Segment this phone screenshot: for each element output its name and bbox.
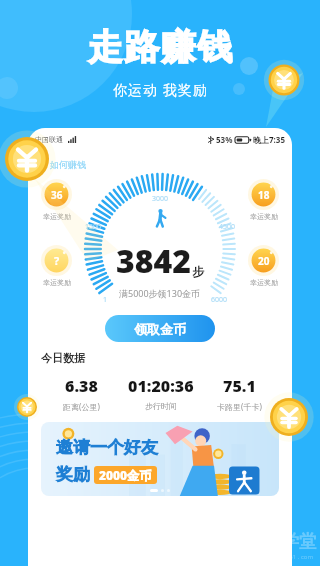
staticText: 满5000步领130金币 xyxy=(119,287,201,299)
button[interactable]: 18 xyxy=(247,178,280,222)
staticText: 1500 xyxy=(85,222,102,232)
button[interactable]: ? xyxy=(40,244,73,288)
staticText: 中国联通 xyxy=(35,135,63,144)
staticText: 步 xyxy=(192,264,204,279)
staticText: 幸运奖励 xyxy=(250,212,278,221)
staticText: 今日数据 xyxy=(41,351,85,365)
button[interactable]: 36 xyxy=(40,178,73,222)
staticText: 奖励 xyxy=(56,464,90,485)
button[interactable]: 如何赚钱 xyxy=(35,156,89,173)
staticText: 6000 xyxy=(211,295,228,305)
staticText: 18 xyxy=(258,188,270,202)
staticText: 3842 xyxy=(116,239,192,283)
staticText: 20 xyxy=(258,254,270,268)
staticText: 1 xyxy=(103,295,108,305)
staticText: 晚上7:35 xyxy=(253,134,285,145)
staticText: 卡路里(千卡) xyxy=(217,401,262,412)
staticText: ? xyxy=(54,253,60,268)
button[interactable]: 邀请一个好友 xyxy=(41,422,279,496)
staticText: 步行时间 xyxy=(145,401,177,411)
staticText: 幸运奖励 xyxy=(43,278,71,287)
staticText: 领取金币 xyxy=(134,321,186,337)
staticText: 软件学堂 xyxy=(248,531,316,552)
button[interactable]: 领取金币 xyxy=(105,315,215,342)
staticText: 幸运奖励 xyxy=(43,212,71,221)
staticText: 邀请一个好友 xyxy=(56,437,158,458)
staticText: 6.38 xyxy=(65,375,98,397)
staticText: 走路赚钱 xyxy=(87,25,233,69)
staticText: 你运动 我奖励 xyxy=(113,80,208,99)
staticText: 距离(公里) xyxy=(63,401,100,412)
staticText: 2000金币 xyxy=(99,467,152,483)
staticText: 36 xyxy=(51,188,63,202)
staticText: 幸运奖励 xyxy=(250,278,278,287)
staticText: 75.1 xyxy=(223,375,256,397)
staticText: 01:20:36 xyxy=(128,375,194,397)
staticText: 53% xyxy=(216,134,233,145)
staticText: 4500 xyxy=(219,222,236,232)
button[interactable]: 20 xyxy=(247,244,280,288)
staticText: 3000 xyxy=(152,194,169,204)
staticText: 如何赚钱 xyxy=(50,159,86,170)
staticText: www. xue51 . com xyxy=(262,553,314,561)
